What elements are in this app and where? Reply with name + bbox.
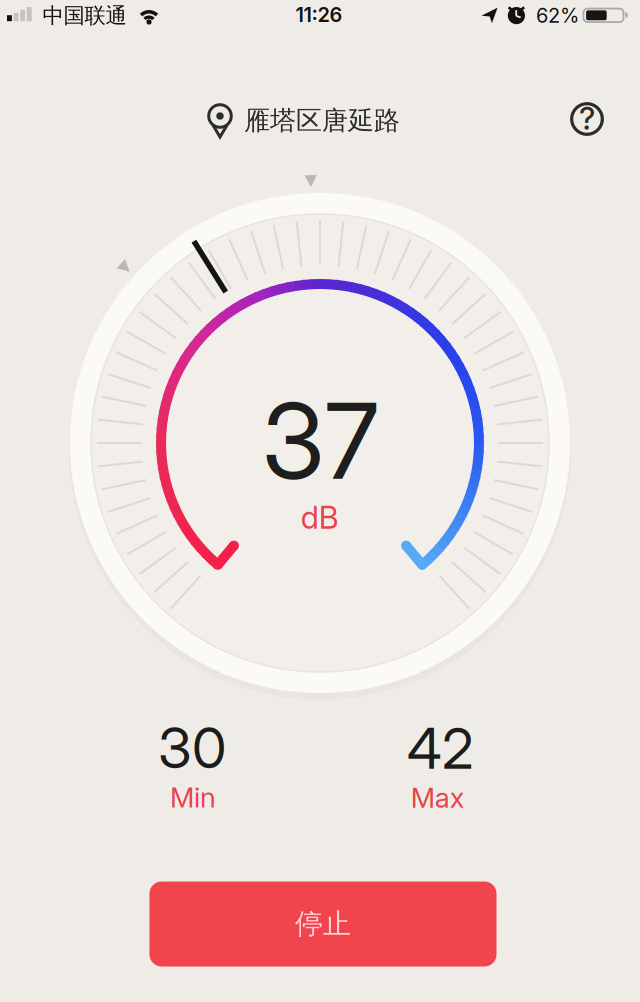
button[interactable]: 雁塔区唐延路 bbox=[206, 103, 400, 138]
button[interactable]: 停止 bbox=[149, 881, 496, 966]
staticText: 37 bbox=[262, 377, 379, 504]
staticText: Max bbox=[411, 781, 465, 814]
staticText: 62% bbox=[536, 4, 579, 27]
staticText: dB bbox=[301, 499, 339, 536]
staticText: Min bbox=[170, 781, 216, 814]
staticText: 雁塔区唐延路 bbox=[244, 104, 400, 137]
staticText: 11:26 bbox=[295, 3, 342, 27]
staticText: 停止 bbox=[295, 907, 351, 941]
staticText: 30 bbox=[158, 714, 226, 782]
staticText: 42 bbox=[407, 715, 473, 782]
staticText: 中国联通 bbox=[42, 2, 126, 29]
button[interactable]: 帮助 bbox=[570, 102, 604, 136]
staticText: ? bbox=[579, 100, 595, 137]
